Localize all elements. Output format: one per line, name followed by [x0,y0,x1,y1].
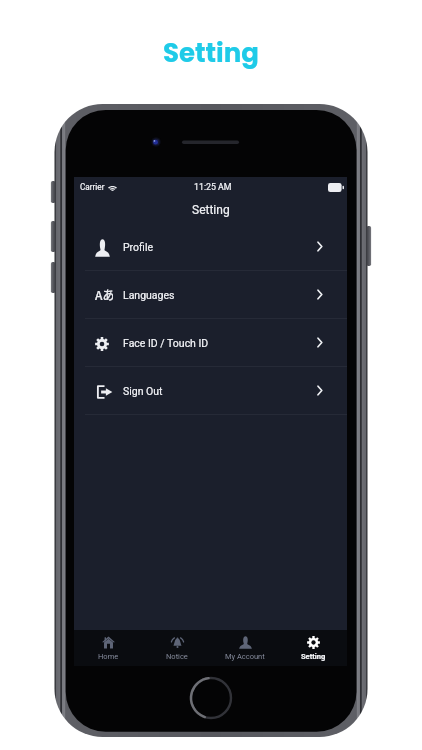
staticText: Setting [163,35,259,71]
button[interactable]: Notice [143,630,211,666]
staticText: Setting [301,652,326,661]
button[interactable]: My Account [211,630,279,666]
staticText: Carrier [80,182,105,192]
button[interactable]: Aあ [74,271,347,318]
staticText: Sign Out [123,385,163,397]
button[interactable]: Sign Out [74,367,347,414]
staticText: Languages [123,289,175,301]
staticText: 11:25 AM [194,182,232,192]
button[interactable]: Face ID / Touch ID [74,319,347,366]
button[interactable]: Home [74,630,143,666]
button[interactable]: Profile [74,223,347,270]
staticText: Aあ [95,286,113,303]
staticText: Home [98,652,119,661]
staticText: My Account [225,652,265,661]
staticText: Notice [166,652,188,661]
staticText: Face ID / Touch ID [123,337,209,349]
staticText: Profile [123,241,154,253]
staticText: Setting [192,203,230,217]
button[interactable]: Setting [279,630,347,666]
